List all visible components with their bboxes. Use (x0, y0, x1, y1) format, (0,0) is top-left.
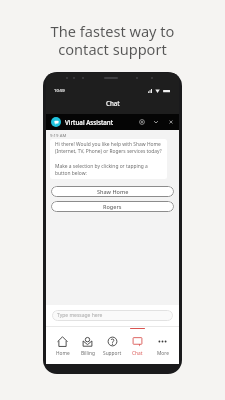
staticText: Home (56, 350, 70, 357)
staticText: Hi there! Would you like help with Shaw … (55, 141, 162, 155)
button[interactable]: Billing (75, 327, 100, 364)
button[interactable]: Settings (139, 119, 145, 125)
staticText: Chat (106, 99, 120, 107)
staticText: Support (103, 350, 122, 357)
staticText: Virtual Assistant (65, 118, 114, 126)
button[interactable]: Type message here (52, 310, 173, 321)
staticText: More (157, 350, 169, 357)
staticText: Billing (81, 350, 95, 357)
button[interactable]: More (150, 327, 175, 364)
staticText: Make a selection by clicking or tapping … (55, 163, 148, 177)
button[interactable]: Shaw Home (51, 186, 174, 197)
staticText: Shaw Home (97, 188, 129, 195)
button[interactable]: Minimize (153, 119, 159, 125)
button[interactable]: Close (168, 119, 174, 125)
button[interactable]: Chat (125, 327, 150, 364)
staticText: 10:59 (54, 88, 65, 94)
button[interactable]: Support (100, 327, 125, 364)
staticText: Rogers (103, 203, 122, 210)
staticText: The fastest way to contact support (0, 21, 225, 60)
staticText: 9:19 AM (50, 132, 67, 138)
button[interactable]: Rogers (51, 201, 174, 212)
staticText: Chat (132, 350, 143, 357)
button[interactable]: Home (50, 327, 75, 364)
staticText: Type message here (57, 312, 103, 319)
button[interactable]: Virtual Assistant (46, 114, 179, 130)
